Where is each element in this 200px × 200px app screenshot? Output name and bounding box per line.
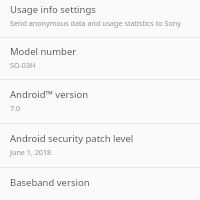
staticText: Baseband version bbox=[10, 176, 90, 189]
button[interactable]: Usage info settings bbox=[0, 0, 200, 37]
staticText: SO-03H bbox=[10, 60, 36, 70]
staticText: 7.0 bbox=[10, 103, 21, 113]
staticText: Model number bbox=[10, 45, 77, 58]
staticText: Usage info settings bbox=[10, 3, 96, 16]
button[interactable]: Baseband version bbox=[0, 168, 200, 200]
staticText: Send anonymous data and usage statistics… bbox=[10, 18, 190, 28]
button[interactable]: Android™ version bbox=[0, 80, 200, 123]
button[interactable]: Android security patch level bbox=[0, 124, 200, 167]
staticText: June 1, 2018 bbox=[10, 147, 52, 157]
button[interactable]: Model number bbox=[0, 38, 200, 79]
staticText: Android™ version bbox=[10, 88, 89, 101]
staticText: Android security patch level bbox=[10, 132, 134, 145]
